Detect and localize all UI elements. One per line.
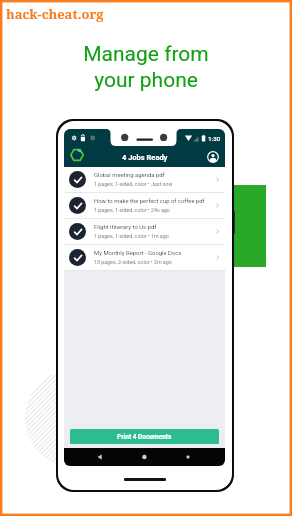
button[interactable]: Flight itinerary to Us pdf bbox=[64, 219, 225, 245]
staticText: Global meeting agenda pdf bbox=[94, 172, 165, 179]
button[interactable]: Print 4 Documents bbox=[70, 429, 219, 444]
button[interactable]: Global meeting agenda pdf bbox=[64, 167, 225, 193]
staticText: How to make the perfect cup of coffee pd… bbox=[94, 198, 205, 205]
staticText: 4 Jobs Ready bbox=[122, 153, 168, 162]
other: App logo bbox=[70, 148, 84, 162]
staticText: Flight itinerary to Us pdf bbox=[94, 224, 157, 231]
staticText: 13 pages, 2-sided, color • 2m ago bbox=[94, 259, 172, 265]
staticText: 1 pages, 1-sided, color • 24s ago bbox=[94, 207, 170, 213]
button[interactable]: Account bbox=[207, 151, 219, 163]
button[interactable]: My Monthly Report - Google Docs bbox=[64, 245, 225, 271]
staticText: Print 4 Documents bbox=[117, 433, 172, 441]
button[interactable]: How to make the perfect cup of coffee pd… bbox=[64, 193, 225, 219]
staticText: My Monthly Report - Google Docs bbox=[94, 250, 182, 257]
staticText: Manage from your phone bbox=[83, 42, 209, 92]
staticText: 1:30 bbox=[208, 135, 221, 142]
staticText: hack-cheat.org bbox=[6, 5, 104, 23]
staticText: 1 pages, 1-sided, color • 1m ago bbox=[94, 233, 169, 239]
staticText: 1 pages, 1-sided, color • Just now bbox=[94, 181, 173, 187]
